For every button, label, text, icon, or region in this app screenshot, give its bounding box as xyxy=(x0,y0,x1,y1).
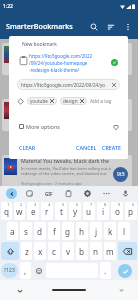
button[interactable]: s xyxy=(20,222,32,240)
button[interactable]: t xyxy=(55,202,67,220)
staticText: c xyxy=(52,246,56,257)
staticText: 7 xyxy=(90,202,93,207)
button[interactable]: Back xyxy=(6,188,17,199)
button[interactable]: More options xyxy=(119,18,136,35)
button[interactable]: CLEAR xyxy=(17,141,38,154)
button[interactable]: Clipboard xyxy=(62,187,75,200)
staticText: GIF xyxy=(45,191,53,197)
staticText: CREATE xyxy=(102,144,122,151)
button[interactable]: , xyxy=(20,262,31,279)
button[interactable]: h xyxy=(76,222,88,240)
button[interactable]: e xyxy=(27,202,39,220)
button[interactable]: design xyxy=(60,97,87,105)
button[interactable]: d xyxy=(34,222,46,240)
button[interactable] xyxy=(2,43,132,75)
staticText: 8 xyxy=(104,202,107,207)
staticText: s xyxy=(24,226,28,237)
staticText: v xyxy=(66,246,71,257)
staticText: youtube xyxy=(30,98,48,104)
staticText: 9t5 xyxy=(117,171,125,178)
button[interactable]: CANCEL xyxy=(74,141,99,154)
button[interactable]: Hide keyboard xyxy=(14,285,25,296)
staticText: More options xyxy=(26,123,60,130)
button[interactable]: y xyxy=(69,202,81,220)
staticText: CLEAR xyxy=(19,144,36,151)
button[interactable]: c xyxy=(48,242,60,260)
staticText: CANCEL xyxy=(76,144,97,151)
staticText: . xyxy=(104,265,107,276)
staticText: o xyxy=(115,206,120,217)
button[interactable]: Backspace xyxy=(118,242,137,260)
button[interactable]: z xyxy=(21,242,32,260)
staticText: y xyxy=(73,206,78,217)
button[interactable]: i xyxy=(97,202,109,220)
button[interactable]: o xyxy=(111,202,123,220)
button[interactable]: f xyxy=(48,222,60,240)
button[interactable]: b xyxy=(76,242,88,260)
staticText: h xyxy=(79,226,85,237)
staticText: k xyxy=(108,226,113,237)
staticText: ?123 xyxy=(4,267,15,274)
staticText: https://9to5google.com/2022 /09/24/youtu… xyxy=(29,53,109,73)
button[interactable]: u xyxy=(83,202,95,220)
staticText: SmarterBookmarks xyxy=(6,21,73,31)
button[interactable]: p xyxy=(125,202,137,220)
button[interactable]: Emoji xyxy=(32,261,45,280)
button[interactable]: m xyxy=(104,242,116,260)
staticText: t xyxy=(60,206,63,217)
button[interactable]: v xyxy=(62,242,74,260)
button[interactable]: ?123 xyxy=(1,263,18,278)
button[interactable]: Shift xyxy=(1,242,19,260)
button[interactable]: GIF xyxy=(42,187,55,200)
button[interactable]: More xyxy=(100,187,113,200)
button[interactable]: q xyxy=(1,202,12,220)
staticText: b xyxy=(79,246,85,257)
button[interactable]: Switch language xyxy=(117,286,126,295)
staticText: design xyxy=(63,98,78,104)
button[interactable]: Settings xyxy=(81,187,94,200)
staticText: 6 xyxy=(76,202,79,207)
staticText: Add a tag xyxy=(90,98,112,105)
staticText: 2 xyxy=(20,202,23,207)
staticText: 5 xyxy=(62,202,65,207)
staticText: p xyxy=(128,206,134,217)
button[interactable] xyxy=(2,99,132,131)
button[interactable]: r xyxy=(41,202,53,220)
staticText: , xyxy=(24,265,27,276)
button[interactable]: l xyxy=(118,222,130,240)
staticText: q xyxy=(4,206,10,217)
staticText: u xyxy=(86,206,92,217)
button[interactable]: . xyxy=(100,262,111,279)
staticText: d xyxy=(37,226,43,237)
button[interactable]: Valid xyxy=(111,59,118,66)
button[interactable]: Stickers xyxy=(23,187,36,200)
button[interactable]: Favourite xyxy=(110,121,121,132)
button[interactable]: w xyxy=(14,202,25,220)
button[interactable]: g xyxy=(62,222,74,240)
staticText: m xyxy=(106,246,114,257)
staticText: redesign of the video screen, and blacke… xyxy=(21,171,113,176)
staticText: 9to5google.com · 7 minutes ago xyxy=(21,181,82,186)
button[interactable]: k xyxy=(104,222,116,240)
button[interactable]: x xyxy=(34,242,46,260)
button[interactable]: Sort xyxy=(102,18,119,35)
button[interactable]: j xyxy=(90,222,102,240)
staticText: https://9to5google.com/2022/09/24/yo xyxy=(21,82,112,88)
staticText: 1:22 xyxy=(3,3,13,10)
staticText: 9 xyxy=(118,202,121,207)
button[interactable]: Voice input xyxy=(119,187,132,200)
button[interactable]: youtube xyxy=(27,97,57,105)
staticText: g xyxy=(65,226,71,237)
button[interactable]: https://9to5google.com/2022/09/24/yo xyxy=(17,79,120,90)
button[interactable]: Material You tweaks, black dark the xyxy=(2,155,132,187)
staticText: x xyxy=(38,246,43,257)
staticText: 0 xyxy=(132,202,135,207)
button[interactable]: n xyxy=(90,242,102,260)
staticText: New bookmark xyxy=(22,41,57,48)
button[interactable]: a xyxy=(7,222,18,240)
button[interactable]: CREATE xyxy=(100,141,124,154)
button[interactable]: Search xyxy=(85,18,102,35)
button[interactable]: More options checkbox xyxy=(19,124,24,129)
button[interactable]: Enter xyxy=(118,264,132,278)
